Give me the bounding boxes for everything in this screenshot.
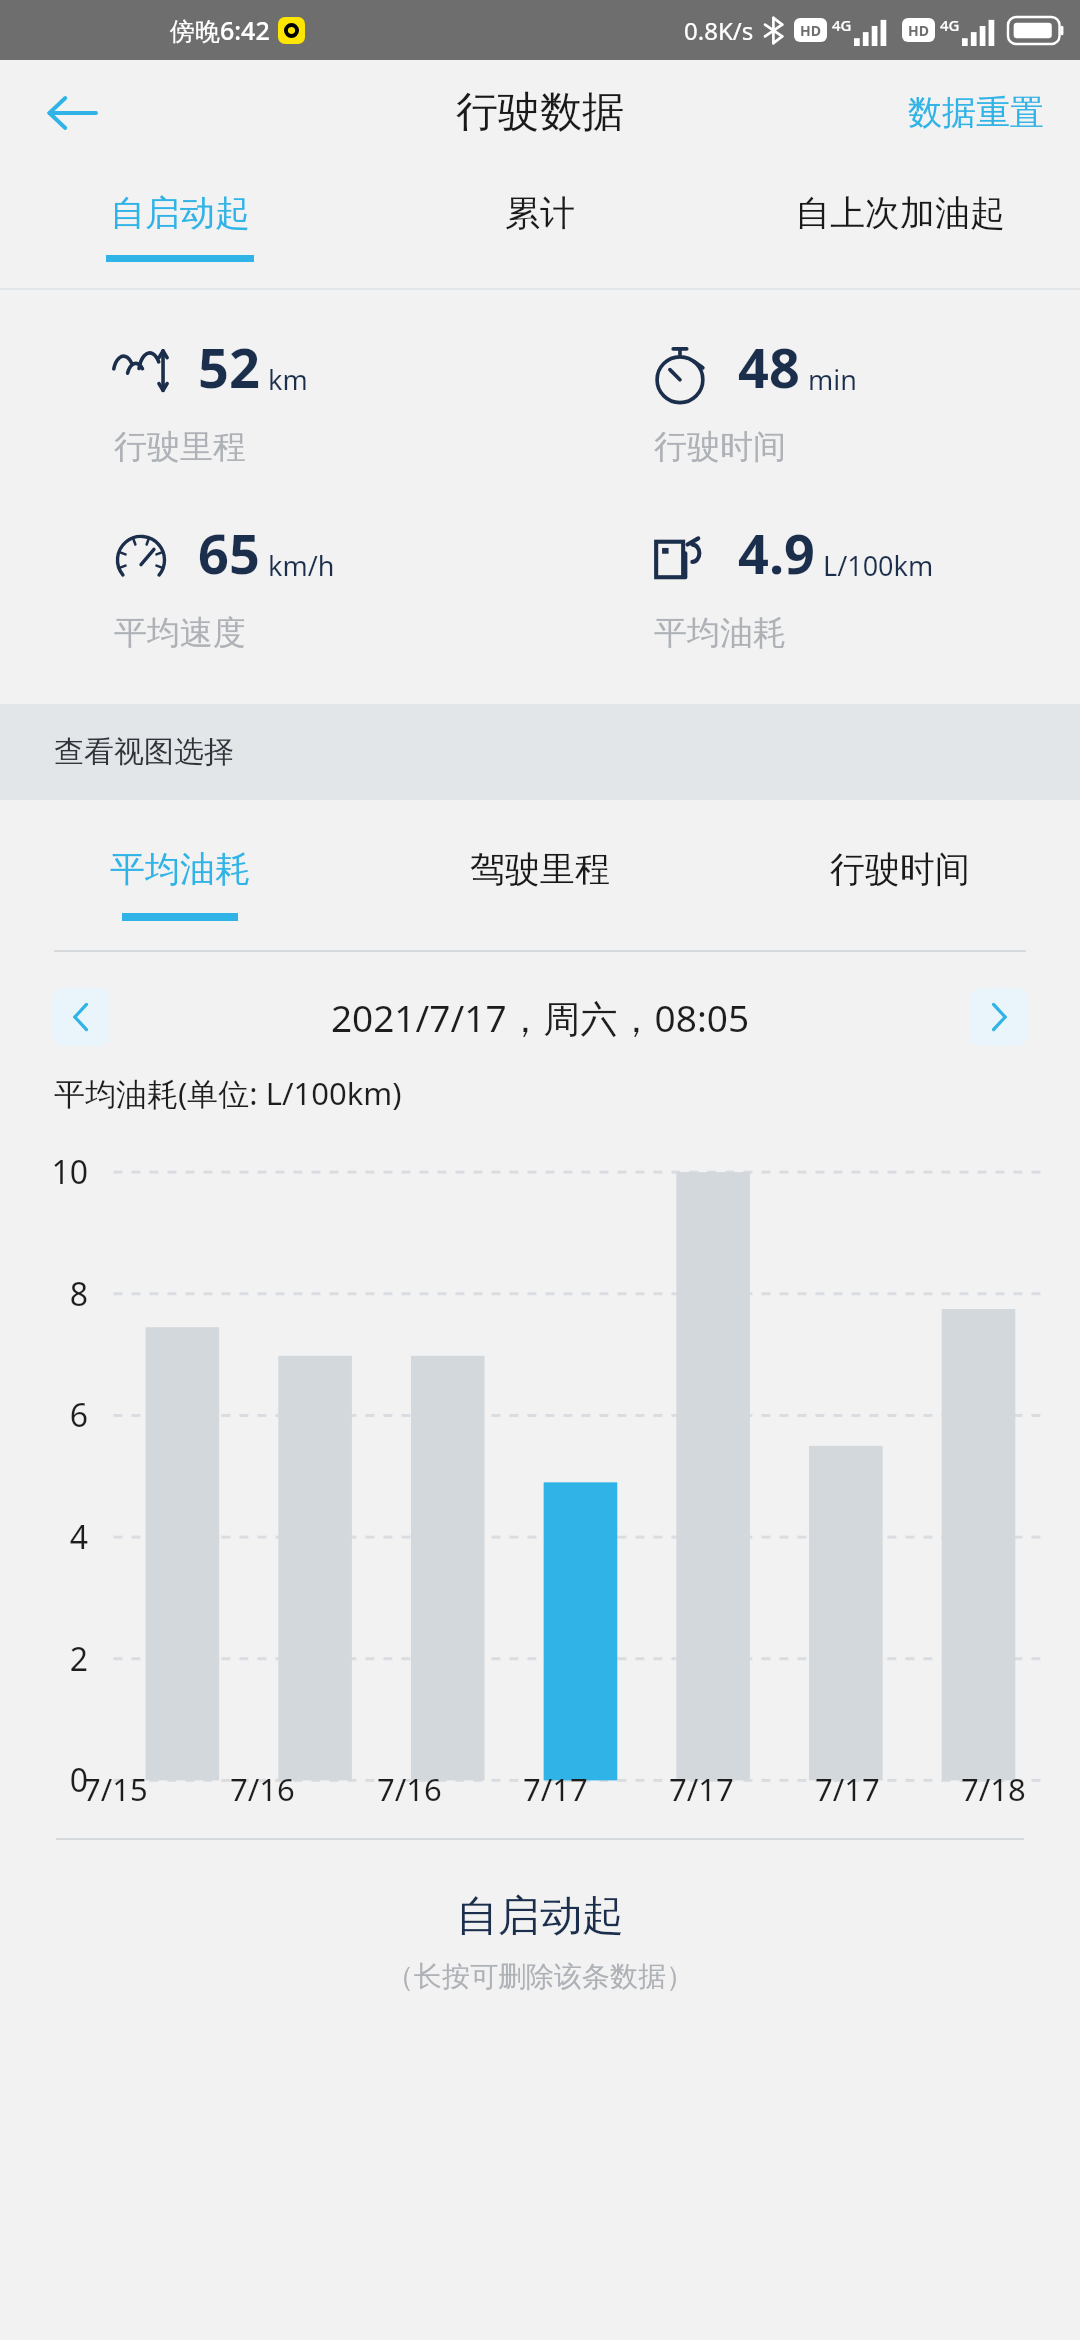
- button[interactable]: Next: [970, 988, 1028, 1046]
- staticText: （长按可删除该条数据）: [386, 1959, 694, 1994]
- staticText: 7/17: [669, 1768, 734, 1810]
- staticText: 自上次加油起: [795, 191, 1005, 235]
- staticText: 4G: [832, 15, 852, 35]
- staticText: 4: [28, 1515, 88, 1559]
- staticText: HD: [800, 21, 821, 40]
- staticText: km/h: [268, 547, 335, 584]
- button[interactable]: 48: [540, 330, 1080, 468]
- staticText: L/100km: [823, 547, 934, 584]
- staticText: 行驶里程: [114, 426, 246, 468]
- staticText: 2021/7/17，周六，08:05: [110, 992, 970, 1043]
- staticText: 65: [198, 516, 260, 590]
- staticText: 48: [738, 330, 800, 404]
- staticText: 7/17: [523, 1768, 588, 1810]
- button[interactable]: 驾驶里程: [360, 800, 720, 950]
- staticText: 数据重置: [908, 91, 1044, 134]
- staticText: 查看视图选择: [54, 733, 234, 771]
- staticText: 0: [28, 1758, 88, 1802]
- staticText: 自启动起: [110, 191, 250, 235]
- staticText: 行驶数据: [456, 86, 624, 139]
- button[interactable]: 自启动起: [0, 165, 360, 288]
- staticText: 平均速度: [114, 612, 246, 654]
- button[interactable]: 累计: [360, 165, 720, 288]
- staticText: 10: [28, 1150, 88, 1194]
- button[interactable]: 数据重置: [902, 81, 1050, 144]
- staticText: 行驶时间: [830, 847, 970, 891]
- staticText: 累计: [505, 191, 575, 235]
- staticText: 7/15: [83, 1768, 148, 1810]
- button[interactable]: 65: [0, 516, 540, 654]
- staticText: km: [268, 361, 308, 398]
- staticText: 平均油耗: [654, 612, 786, 654]
- staticText: 平均油耗(单位: L/100km): [54, 1072, 402, 1114]
- staticText: 6: [28, 1393, 88, 1437]
- button[interactable]: 平均油耗: [0, 800, 360, 950]
- button[interactable]: 52: [0, 330, 540, 468]
- staticText: 行驶时间: [654, 426, 786, 468]
- button[interactable]: Previous: [52, 988, 110, 1046]
- button[interactable]: 自启动起: [0, 1890, 1080, 1994]
- button[interactable]: Back: [36, 77, 108, 149]
- staticText: 2: [28, 1637, 88, 1681]
- staticText: 傍晚6:42: [170, 13, 270, 47]
- staticText: 52: [198, 330, 260, 404]
- staticText: 0.8K/s: [684, 14, 754, 47]
- staticText: 7/17: [815, 1768, 880, 1810]
- button[interactable]: 行驶时间: [720, 800, 1080, 950]
- staticText: 平均油耗: [110, 847, 250, 891]
- staticText: HD: [908, 21, 929, 40]
- staticText: 7/18: [961, 1768, 1026, 1810]
- staticText: 4.9: [738, 516, 815, 590]
- button[interactable]: 4.9: [540, 516, 1080, 654]
- staticText: 7/16: [230, 1768, 295, 1810]
- staticText: 8: [28, 1272, 88, 1316]
- button[interactable]: 自上次加油起: [720, 165, 1080, 288]
- staticText: 驾驶里程: [470, 847, 610, 891]
- staticText: min: [808, 361, 857, 398]
- staticText: 自启动起: [456, 1890, 624, 1943]
- staticText: 7/16: [377, 1768, 442, 1810]
- staticText: 4G: [940, 15, 960, 35]
